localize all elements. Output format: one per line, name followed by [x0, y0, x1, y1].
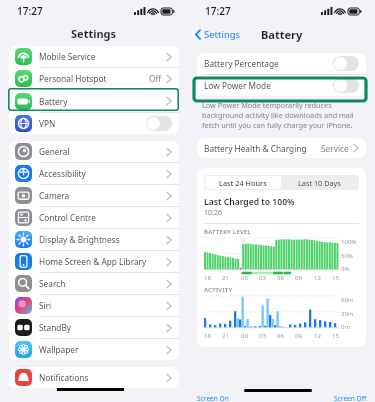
button[interactable]: Accessibility: [9, 163, 179, 184]
staticText: 0%: [341, 265, 350, 273]
staticText: Off: [149, 73, 162, 84]
staticText: Accessibility: [39, 168, 166, 179]
button[interactable]: Battery Health & Charging: [197, 138, 366, 158]
staticText: Screen On: [197, 394, 229, 402]
staticText: 15: [332, 274, 339, 282]
staticText: Home Screen & App Library: [39, 256, 166, 267]
staticText: 50%: [341, 252, 353, 260]
button[interactable]: Mobile Service: [9, 46, 179, 67]
staticText: Search: [39, 278, 166, 289]
staticText: 30m: [341, 310, 354, 318]
staticText: Mobile Service: [39, 51, 166, 62]
staticText: 09: [295, 332, 302, 340]
staticText: Low Power Mode: [204, 80, 333, 91]
staticText: StandBy: [39, 322, 166, 333]
staticText: 09: [295, 274, 302, 282]
staticText: 60m: [341, 296, 354, 304]
staticText: Camera: [39, 190, 166, 201]
staticText: 21: [222, 274, 229, 282]
button[interactable]: Siri: [9, 295, 179, 316]
staticText: 21: [222, 332, 229, 340]
staticText: 17:27: [205, 4, 231, 18]
button[interactable]: Camera: [9, 185, 179, 206]
staticText: Display & Brightness: [39, 234, 166, 245]
button[interactable]: Low Power Mode: [197, 75, 366, 96]
staticText: 15: [332, 332, 339, 340]
staticText: Last 10 Days: [298, 178, 341, 188]
staticText: Low Power Mode temporarily reduces backg…: [202, 100, 363, 130]
button[interactable]: StandBy: [9, 317, 179, 338]
staticText: 17:27: [17, 4, 43, 18]
staticText: Battery: [39, 96, 166, 107]
button[interactable]: Low Power Mode: [333, 78, 359, 93]
staticText: 00: [241, 332, 248, 340]
staticText: 00: [241, 274, 248, 282]
button[interactable]: VPN: [146, 116, 172, 131]
staticText: Settings: [71, 26, 117, 41]
button[interactable]: Last 10 Days: [281, 176, 358, 189]
staticText: 03: [259, 332, 266, 340]
staticText: Control Centre: [39, 212, 166, 223]
staticText: 0m: [341, 323, 351, 331]
staticText: BATTERY LEVEL: [204, 228, 252, 236]
staticText: Siri: [39, 300, 166, 311]
button[interactable]: Control Centre: [9, 207, 179, 228]
staticText: Personal Hotspot: [39, 73, 149, 84]
button[interactable]: Search: [9, 273, 179, 294]
staticText: Screen Off: [334, 394, 367, 402]
staticText: 18: [204, 332, 211, 340]
staticText: Service: [321, 143, 349, 154]
staticText: Notifications: [39, 372, 166, 383]
staticText: Battery Percentage: [204, 58, 333, 69]
staticText: 100%: [341, 238, 357, 246]
staticText: Last 24 Hours: [219, 178, 267, 188]
staticText: 12: [314, 332, 321, 340]
staticText: 06: [277, 332, 284, 340]
button[interactable]: Battery Percentage: [333, 56, 359, 71]
staticText: 18: [204, 274, 211, 282]
staticText: Last Charged to 100%: [204, 196, 295, 208]
button[interactable]: Notifications: [9, 367, 179, 388]
staticText: 10:26: [204, 208, 222, 218]
button[interactable]: Battery: [9, 90, 179, 112]
staticText: General: [39, 146, 166, 157]
staticText: Wallpaper: [39, 344, 166, 355]
button[interactable]: General: [9, 141, 179, 162]
staticText: VPN: [39, 118, 146, 129]
staticText: 12: [314, 274, 321, 282]
staticText: Battery: [261, 27, 303, 42]
button[interactable]: Settings: [195, 28, 241, 41]
button[interactable]: Display & Brightness: [9, 229, 179, 250]
staticText: ACTIVITY: [204, 286, 233, 294]
button[interactable]: Battery Percentage: [197, 53, 366, 74]
staticText: 03: [259, 274, 266, 282]
staticText: Settings: [204, 28, 241, 41]
button[interactable]: Home Screen & App Library: [9, 251, 179, 272]
button[interactable]: Last 24 Hours: [205, 176, 281, 189]
staticText: 06: [277, 274, 284, 282]
button[interactable]: Wallpaper: [9, 339, 179, 360]
button[interactable]: Personal Hotspot: [9, 68, 179, 89]
staticText: Battery Health & Charging: [204, 143, 321, 154]
button[interactable]: VPN: [9, 113, 179, 134]
